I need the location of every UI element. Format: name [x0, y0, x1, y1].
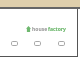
button[interactable]: house — [26, 26, 66, 32]
staticText: factory — [48, 26, 66, 32]
staticText: house — [32, 26, 48, 32]
button[interactable]: Card three — [58, 41, 65, 46]
button[interactable]: Card two — [34, 41, 41, 46]
button[interactable]: Card one — [11, 41, 18, 46]
